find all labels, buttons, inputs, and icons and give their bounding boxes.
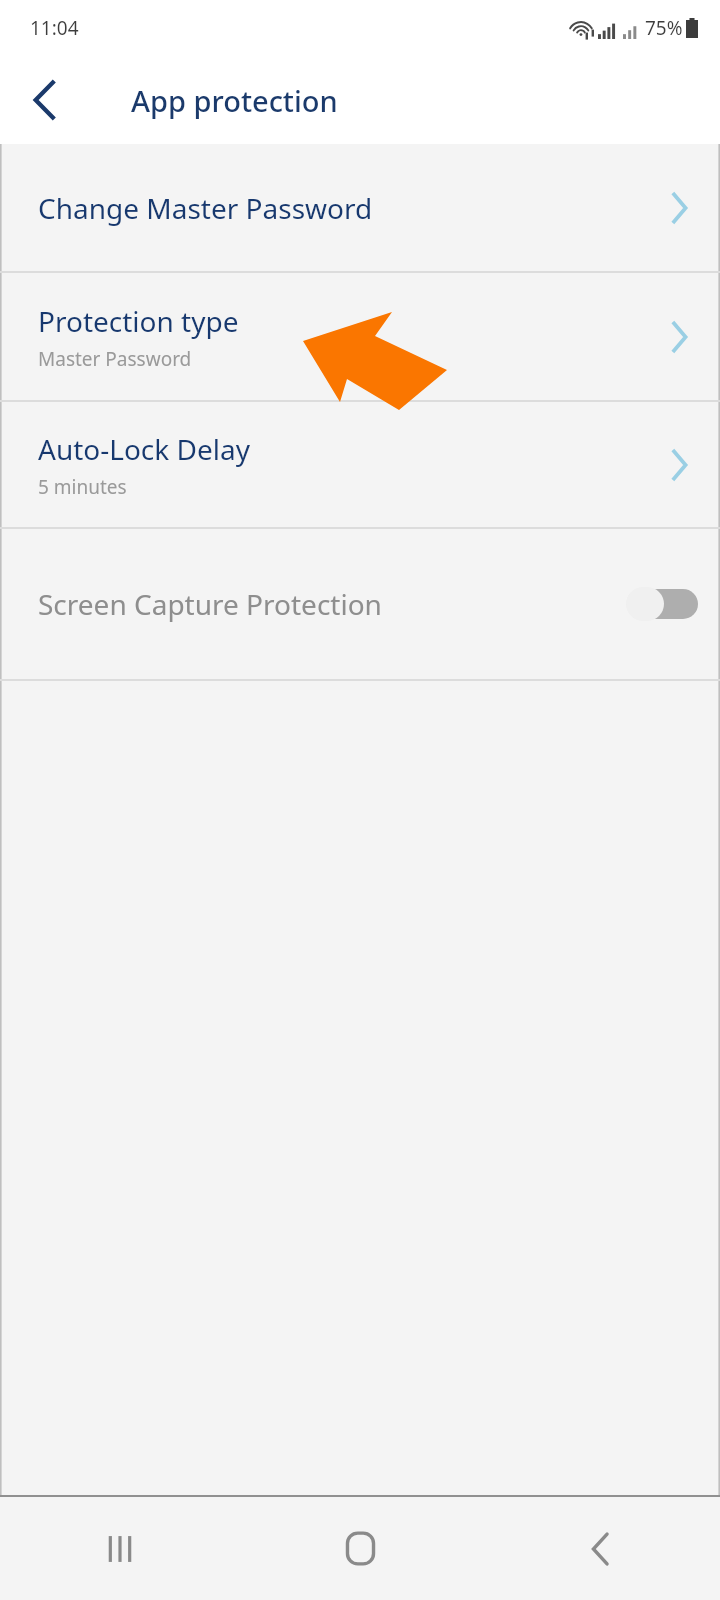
button[interactable]: Recent apps — [0, 1497, 240, 1600]
staticText: 5 minutes — [38, 474, 127, 500]
staticText: 11:04 — [30, 15, 79, 41]
staticText: App protection — [131, 81, 338, 120]
staticText: Protection type — [38, 302, 239, 340]
button[interactable]: Change Master Password — [0, 144, 720, 271]
button[interactable]: Auto-Lock Delay — [0, 402, 720, 527]
staticText: 75% — [645, 15, 683, 41]
staticText: Master Password — [38, 346, 192, 372]
button[interactable]: Protection type — [0, 273, 720, 400]
button[interactable]: Back — [14, 69, 76, 131]
staticText: Auto-Lock Delay — [38, 430, 250, 468]
button[interactable]: Home — [240, 1497, 480, 1600]
staticText: Screen Capture Protection — [38, 585, 626, 623]
staticText: Change Master Password — [38, 189, 373, 227]
button[interactable]: Screen Capture Protection — [0, 529, 720, 679]
button[interactable]: Back — [480, 1497, 720, 1600]
